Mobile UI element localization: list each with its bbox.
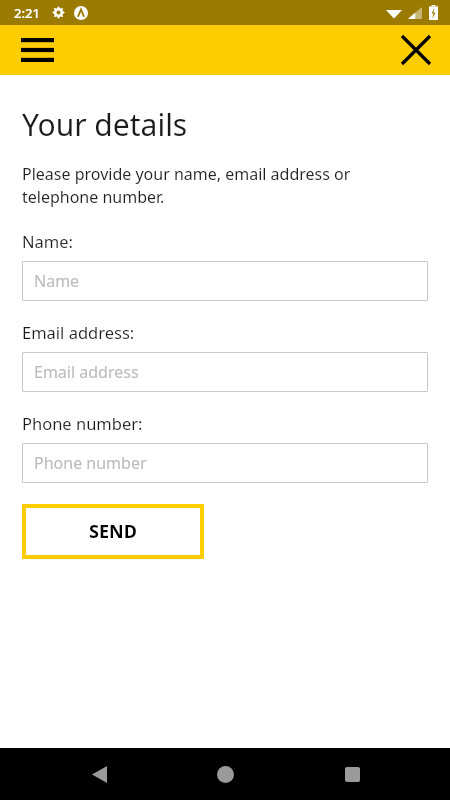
staticText: Email address <box>34 361 139 383</box>
button[interactable]: Home <box>197 748 253 800</box>
button[interactable]: Name <box>22 261 428 301</box>
staticText: 2:21 <box>14 4 40 22</box>
button[interactable]: Email address <box>22 352 428 392</box>
staticText: Name: <box>22 230 73 252</box>
staticText: Email address: <box>22 321 135 343</box>
staticText: SEND <box>89 519 137 544</box>
button[interactable]: Recent apps <box>324 748 380 800</box>
staticText: Phone number <box>34 452 147 474</box>
button[interactable]: Back <box>71 748 127 800</box>
button[interactable]: Phone number <box>22 443 428 483</box>
staticText: Please provide your name, email address … <box>22 163 428 208</box>
button[interactable]: SEND <box>22 504 204 559</box>
staticText: Phone number: <box>22 412 143 434</box>
button[interactable]: Menu <box>10 25 64 75</box>
staticText: Name <box>34 270 80 292</box>
staticText: Your details <box>22 104 188 145</box>
button[interactable]: Close <box>390 25 442 75</box>
